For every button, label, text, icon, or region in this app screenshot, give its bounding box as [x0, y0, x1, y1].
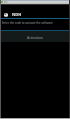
staticText: Enter the code to activate the software [2, 21, 70, 25]
button[interactable]: Activation [0, 31, 70, 42]
staticText: Activation [27, 35, 44, 40]
staticText: NDH [12, 12, 22, 17]
button[interactable]: NDH [4, 12, 70, 17]
